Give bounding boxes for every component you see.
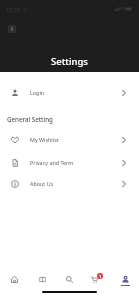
staticText: My Wishlist — [30, 136, 59, 143]
button[interactable]: Back — [8, 25, 16, 33]
button[interactable]: Catalog — [27, 269, 55, 290]
staticText: About Us — [30, 180, 54, 187]
button[interactable]: About Us — [0, 173, 139, 195]
staticText: Login — [30, 89, 45, 96]
staticText: General Setting — [7, 115, 53, 123]
button[interactable]: Login — [0, 82, 139, 104]
staticText: Settings — [51, 55, 88, 68]
button[interactable]: Profile — [111, 269, 139, 290]
staticText: Privacy and Term — [30, 159, 74, 166]
staticText: 1 — [99, 274, 102, 279]
button[interactable]: Home — [0, 269, 27, 290]
button[interactable]: Privacy and Term — [0, 152, 139, 174]
button[interactable]: Cart — [83, 269, 111, 290]
button[interactable]: My Wishlist — [0, 129, 139, 151]
button[interactable]: Search — [55, 269, 83, 290]
staticText: 12:30 — [6, 6, 21, 13]
